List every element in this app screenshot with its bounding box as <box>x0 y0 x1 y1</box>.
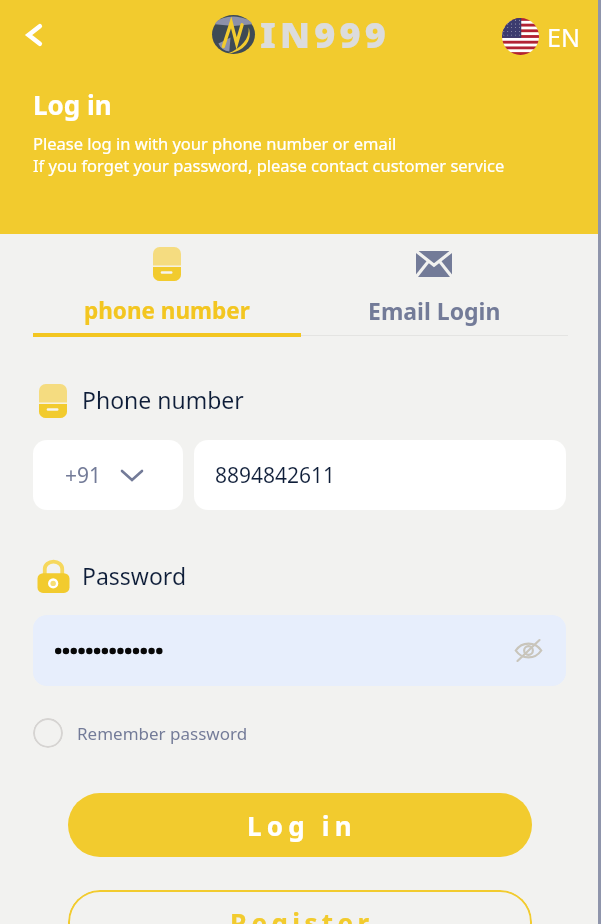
staticText: Password <box>82 560 187 591</box>
staticText: Phone number <box>82 384 244 415</box>
staticText: Remember password <box>77 722 248 745</box>
staticText: If you forget your password, please cont… <box>33 154 505 176</box>
staticText: Email Login <box>368 295 501 326</box>
button[interactable]: Back <box>15 15 55 55</box>
staticText: IN999 <box>260 10 391 59</box>
staticText: Register <box>230 905 374 924</box>
staticText: Please log in with your phone number or … <box>33 132 397 154</box>
button[interactable]: Email Login <box>300 234 568 326</box>
staticText: Log in <box>247 808 357 843</box>
button[interactable]: Remember password <box>33 718 248 748</box>
staticText: +91 <box>65 461 102 490</box>
button[interactable]: Register <box>68 890 532 924</box>
button[interactable]: 8894842611 <box>194 440 566 510</box>
button[interactable]: +91 <box>33 440 183 510</box>
button[interactable]: Show password <box>514 636 543 665</box>
button[interactable]: Log in <box>68 793 532 857</box>
button[interactable]: phone number <box>33 234 300 326</box>
staticText: 8894842611 <box>215 461 336 490</box>
staticText: EN <box>547 20 580 54</box>
button[interactable]: Show password <box>33 615 566 686</box>
button[interactable]: Change language <box>502 18 580 55</box>
staticText: phone number <box>84 295 250 326</box>
staticText: Log in <box>33 87 112 122</box>
